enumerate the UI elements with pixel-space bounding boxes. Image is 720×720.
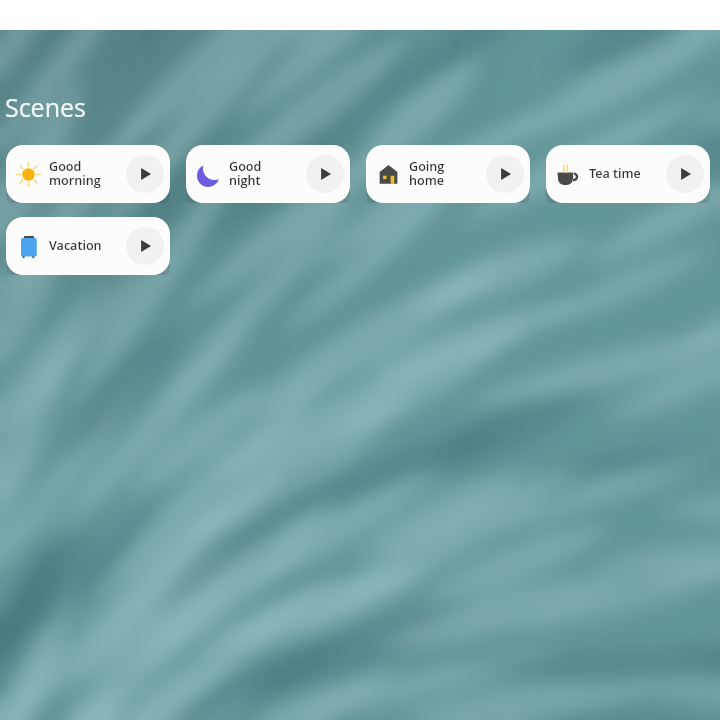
staticText: Tea time — [589, 167, 666, 181]
button[interactable]: Tea time — [546, 145, 710, 203]
button[interactable]: Going home — [366, 145, 530, 203]
button[interactable]: Good morning — [6, 145, 170, 203]
staticText: Scenes — [5, 90, 86, 124]
button[interactable]: Play scene — [486, 155, 524, 193]
staticText: Good morning — [49, 160, 126, 188]
button[interactable]: Play scene — [666, 155, 704, 193]
staticText: Good night — [229, 160, 306, 188]
button[interactable]: Good night — [186, 145, 350, 203]
button[interactable]: Play scene — [126, 155, 164, 193]
button[interactable]: Play scene — [306, 155, 344, 193]
button[interactable]: Vacation — [6, 217, 170, 275]
staticText: Going home — [409, 160, 486, 188]
button[interactable]: Play scene — [126, 227, 164, 265]
staticText: Vacation — [49, 239, 126, 253]
